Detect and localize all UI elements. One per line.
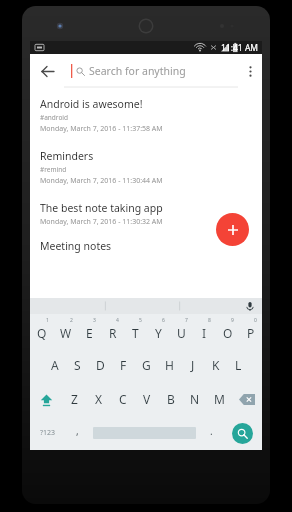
button[interactable]: Search for anything [64, 54, 238, 88]
staticText: 5 [139, 317, 142, 324]
staticText: Meeting notes [40, 239, 112, 253]
staticText: Q [37, 325, 47, 341]
staticText: 7 [185, 317, 188, 324]
button[interactable]: V [135, 382, 159, 416]
button[interactable]: K [204, 348, 227, 382]
staticText: E [86, 325, 93, 341]
staticText: S [74, 357, 81, 373]
button[interactable]: 8 [193, 314, 216, 348]
staticText: U [177, 325, 186, 341]
button[interactable]: , [66, 416, 88, 450]
staticText: W [60, 325, 72, 341]
button[interactable]: D [89, 348, 112, 382]
staticText: . [210, 424, 213, 438]
button[interactable]: B [159, 382, 183, 416]
staticText: Monday, March 7, 2016 - 11:30:32 AM [40, 217, 163, 227]
button[interactable]: S [66, 348, 89, 382]
staticText: H [165, 357, 174, 373]
button[interactable]: C [111, 382, 135, 416]
staticText: 8 [208, 317, 211, 324]
staticText: L [235, 357, 242, 373]
button[interactable]: A [43, 348, 66, 382]
staticText: 4 [116, 317, 119, 324]
staticText: A [51, 357, 59, 373]
button[interactable]: 0 [239, 314, 262, 348]
button[interactable]: L [227, 348, 250, 382]
staticText: Y [155, 325, 162, 341]
staticText: Monday, March 7, 2016 - 11:30:44 AM [40, 176, 163, 186]
button[interactable]: 4 [101, 314, 124, 348]
staticText: The best note taking app [40, 201, 163, 215]
staticText: 2 [70, 317, 73, 324]
staticText: F [120, 357, 127, 373]
staticText: I [202, 325, 207, 341]
staticText: C [119, 391, 127, 407]
button[interactable]: Z [62, 382, 87, 416]
staticText: J [191, 357, 195, 373]
button[interactable]: G [135, 348, 158, 382]
button[interactable]: 5 [124, 314, 147, 348]
button[interactable]: J [181, 348, 204, 382]
staticText: Monday, March 7, 2016 - 11:37:58 AM [40, 124, 163, 134]
button[interactable]: 3 [78, 314, 101, 348]
staticText: #android [40, 113, 69, 122]
staticText: Search for anything [89, 64, 186, 78]
button[interactable]: Shift [30, 382, 62, 416]
button[interactable]: F [112, 348, 135, 382]
button[interactable]: The best note taking app [30, 192, 262, 233]
staticText: Z [71, 391, 78, 407]
button[interactable]: Delete [231, 382, 262, 416]
button[interactable]: ?123 [30, 416, 66, 450]
staticText: Reminders [40, 149, 94, 163]
button[interactable]: Reminders [30, 140, 262, 192]
staticText: T [132, 325, 139, 341]
staticText: #remind [40, 165, 67, 174]
staticText: O [223, 325, 233, 341]
button[interactable]: 9 [216, 314, 239, 348]
staticText: V [143, 391, 151, 407]
staticText: 3 [93, 317, 96, 324]
button[interactable]: 7 [170, 314, 193, 348]
button[interactable]: H [158, 348, 181, 382]
staticText: 1 [46, 317, 49, 324]
button[interactable] [88, 416, 200, 450]
staticText: ?123 [40, 428, 56, 438]
staticText: R [109, 325, 117, 341]
button[interactable]: 6 [147, 314, 170, 348]
staticText: N [190, 391, 200, 407]
button[interactable]: X [87, 382, 111, 416]
staticText: Android is awesome! [40, 97, 143, 111]
staticText: X [95, 391, 103, 407]
button[interactable]: M [207, 382, 231, 416]
staticText: M [214, 391, 225, 407]
staticText: K [212, 357, 220, 373]
button[interactable]: Meeting notes [30, 233, 262, 253]
button[interactable]: 2 [54, 314, 78, 348]
staticText: 0 [254, 317, 257, 324]
button[interactable]: 1 [30, 314, 54, 348]
staticText: G [142, 357, 151, 373]
button[interactable]: Search [222, 416, 262, 450]
button[interactable]: New note [216, 213, 249, 246]
staticText: B [167, 391, 175, 407]
staticText: D [96, 357, 105, 373]
button[interactable]: . [200, 416, 222, 450]
button[interactable]: Back [30, 54, 64, 88]
staticText: P [247, 325, 255, 341]
staticText: 9 [231, 317, 234, 324]
button[interactable]: Android is awesome! [30, 88, 262, 140]
staticText: , [76, 424, 79, 438]
staticText: 11:41 AM [221, 42, 259, 54]
button[interactable]: N [183, 382, 207, 416]
button[interactable]: Voice input [30, 298, 262, 314]
staticText: 6 [162, 317, 165, 324]
button[interactable]: More options [238, 54, 262, 88]
button[interactable]: Voice input [245, 301, 255, 311]
